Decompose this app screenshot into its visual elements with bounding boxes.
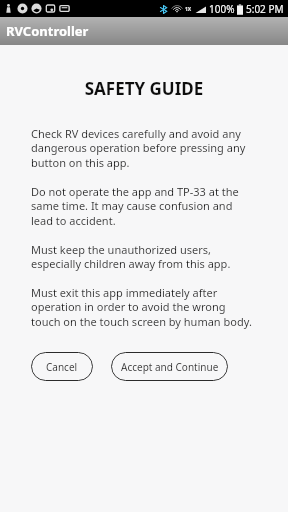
- staticText: 1X: [185, 6, 192, 13]
- staticText: 5:02 PM: [246, 2, 284, 16]
- staticText: Must keep the unauthorized users, especi…: [31, 242, 257, 272]
- staticText: Check RV devices carefully and avoid any…: [31, 126, 257, 171]
- button[interactable]: Accept and Continue: [111, 352, 228, 381]
- staticText: SAFETY GUIDE: [31, 77, 257, 100]
- staticText: RVController: [6, 22, 89, 40]
- staticText: Must exit this app immediately after ope…: [31, 285, 257, 330]
- staticText: Cancel: [46, 360, 78, 374]
- button[interactable]: Cancel: [31, 352, 93, 381]
- staticText: Accept and Continue: [121, 360, 219, 374]
- staticText: Do not operate the app and TP-33 at the …: [31, 184, 257, 229]
- staticText: 100%: [209, 2, 235, 16]
